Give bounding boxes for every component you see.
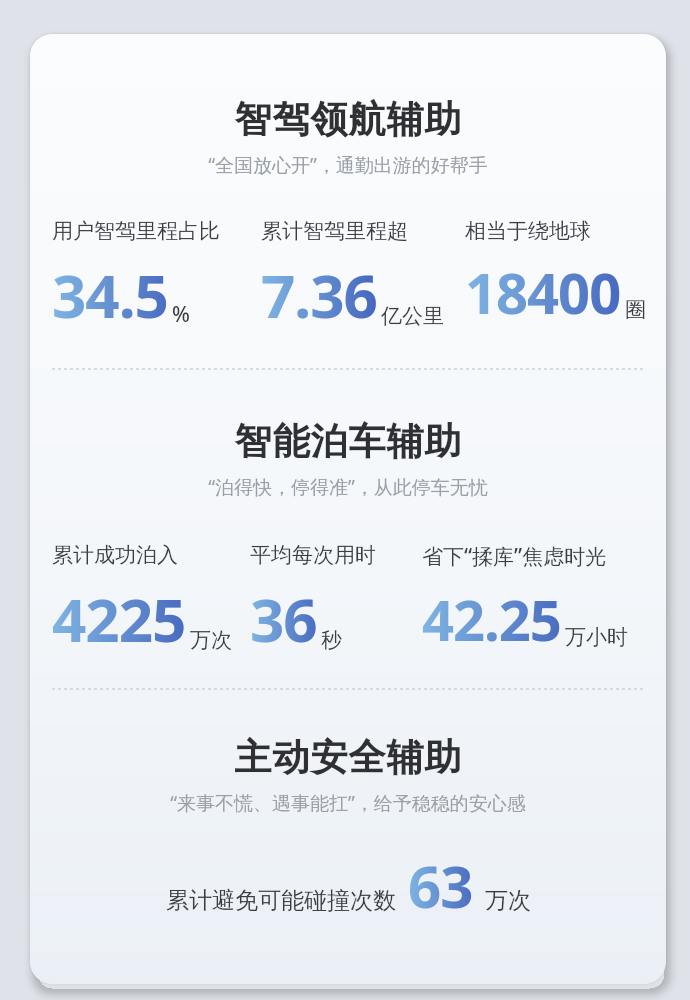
staticText: “泊得快，停得准”，从此停车无忧	[208, 474, 488, 500]
staticText: 主动安全辅助	[234, 734, 462, 781]
staticText: 相当于绕地球	[465, 218, 591, 244]
staticText: “全国放心开”，通勤出游的好帮手	[208, 152, 488, 178]
staticText: 累计成功泊入	[52, 542, 178, 568]
staticText: 累计智驾里程超	[261, 218, 408, 244]
staticText: 18400	[465, 254, 621, 330]
staticText: 万小时	[565, 624, 628, 650]
staticText: 7.36	[261, 254, 377, 336]
staticText: 累计避免可能碰撞次数	[166, 886, 396, 915]
staticText: 63	[408, 846, 473, 925]
staticText: 智驾领航辅助	[234, 96, 462, 143]
staticText: 用户智驾里程占比	[52, 218, 220, 244]
staticText: 42.25	[422, 581, 561, 657]
staticText: 省下“揉库”焦虑时光	[422, 542, 607, 571]
staticText: 万次	[485, 886, 531, 915]
staticText: 36	[250, 578, 317, 660]
staticText: 4225	[52, 578, 186, 660]
staticText: 亿公里	[381, 303, 444, 329]
staticText: “来事不慌、遇事能扛”，给予稳稳的安心感	[170, 790, 526, 816]
button[interactable]: 智驾领航辅助	[30, 34, 666, 984]
staticText: 平均每次用时	[250, 542, 376, 568]
staticText: 秒	[321, 627, 342, 653]
staticText: 34.5	[52, 254, 168, 336]
staticText: 圈	[625, 297, 644, 323]
staticText: %	[172, 300, 190, 329]
staticText: 万次	[190, 627, 232, 653]
staticText: 智能泊车辅助	[234, 418, 462, 465]
